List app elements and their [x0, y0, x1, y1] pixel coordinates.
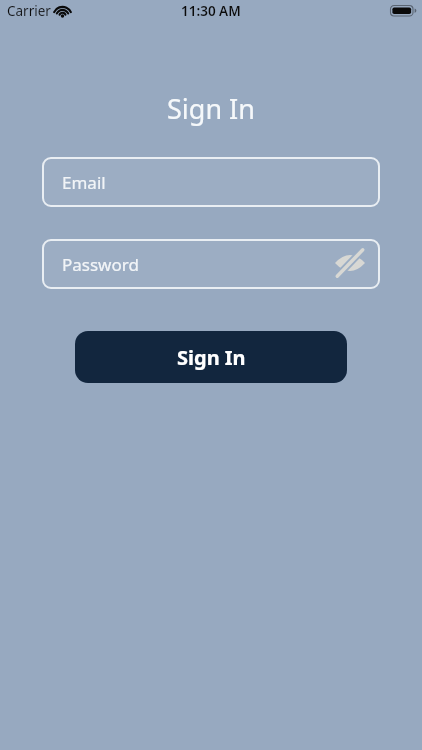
button[interactable]: Email [42, 157, 380, 207]
staticText: Email [62, 171, 106, 194]
button[interactable]: Sign In [75, 331, 347, 383]
staticText: Sign In [167, 90, 255, 127]
staticText: 11:30 AM [181, 2, 241, 20]
staticText: Carrier [7, 2, 51, 20]
staticText: Password [62, 253, 139, 276]
staticText: Sign In [177, 344, 246, 371]
button[interactable]: Password [42, 239, 380, 289]
button[interactable] [334, 247, 366, 279]
